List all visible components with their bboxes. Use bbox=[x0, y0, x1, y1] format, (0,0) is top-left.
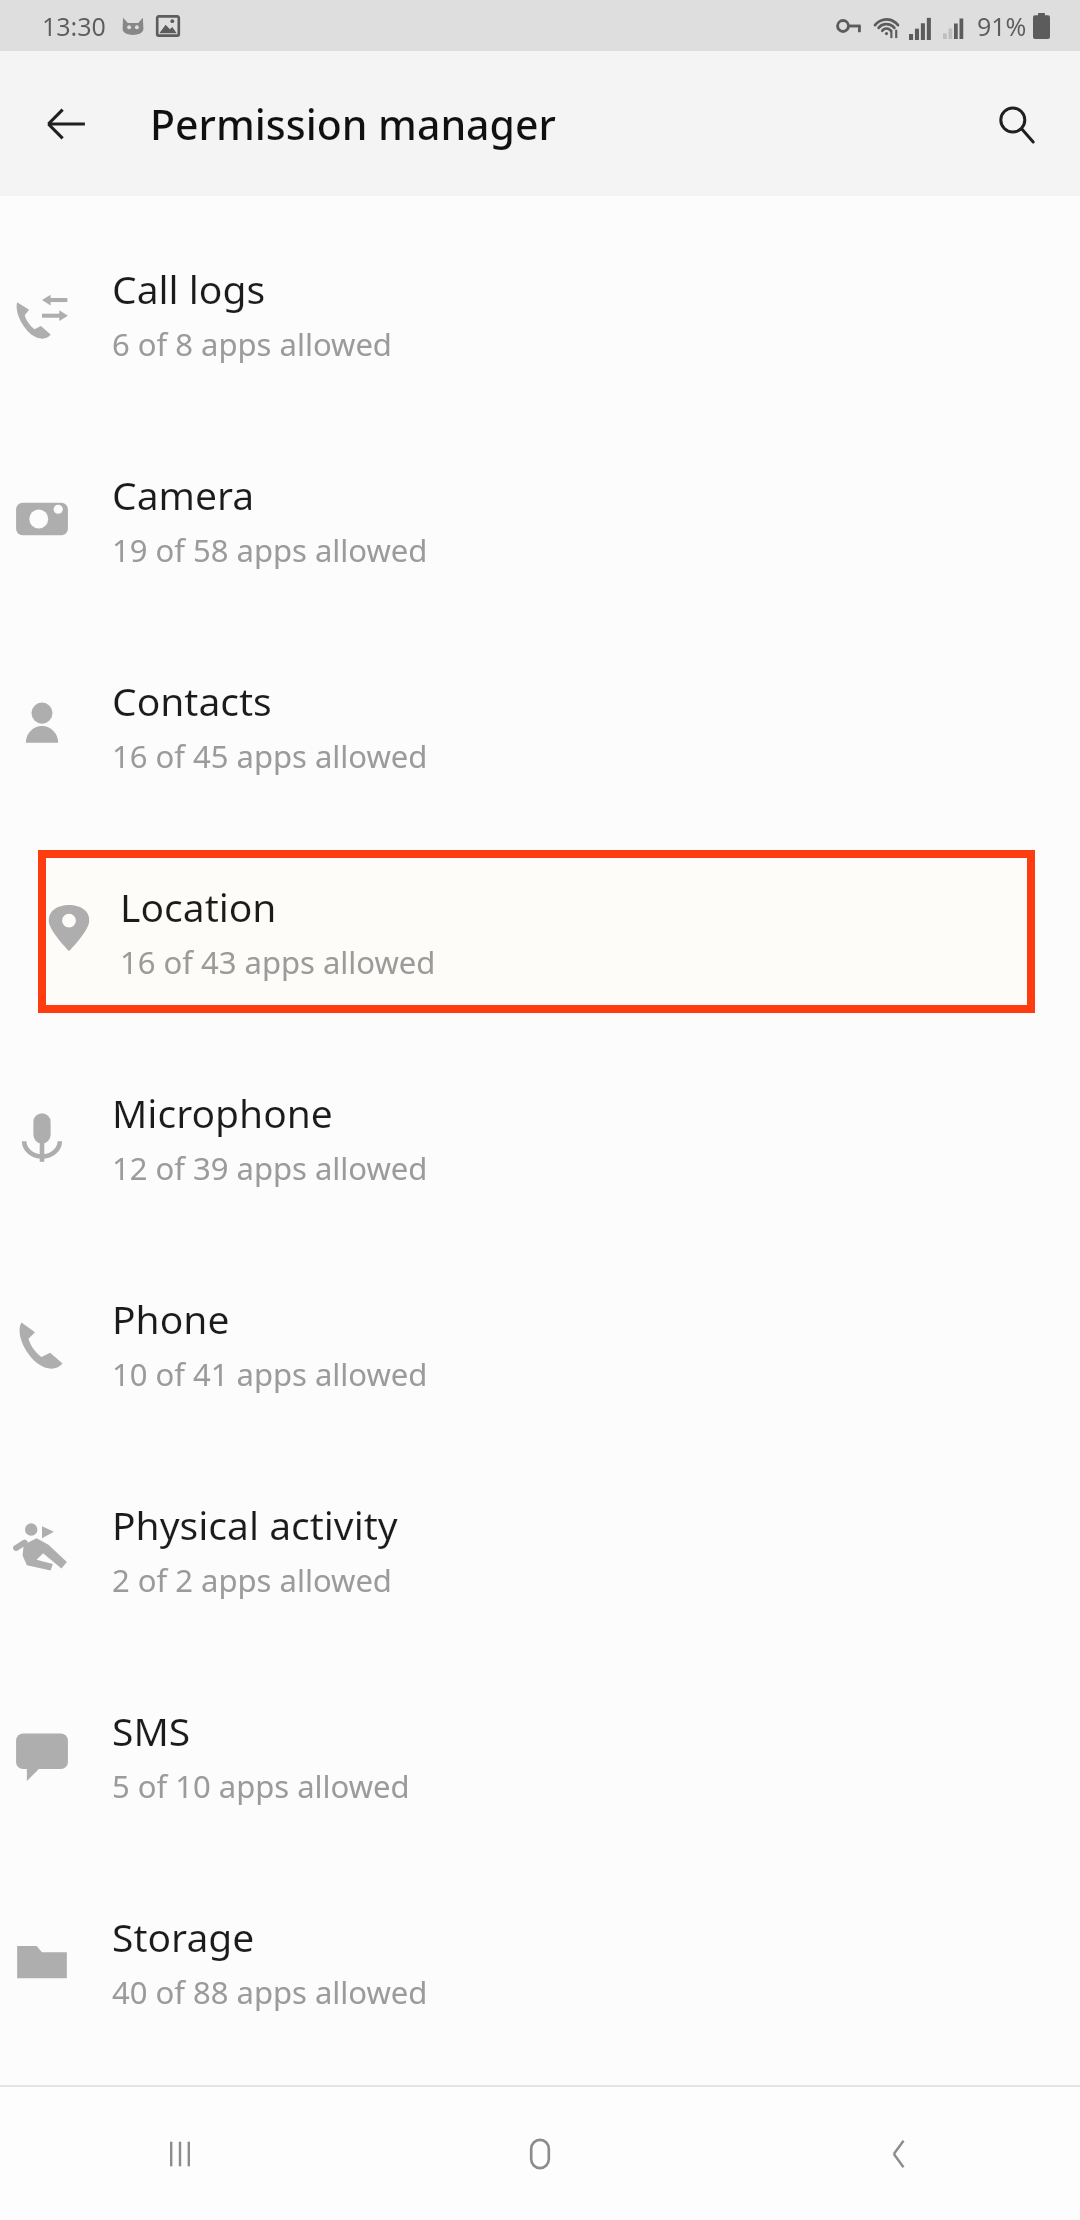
staticText: 12 of 39 apps allowed bbox=[112, 1147, 428, 1189]
staticText: 40 of 88 apps allowed bbox=[112, 1971, 428, 2013]
staticText: Location bbox=[120, 880, 277, 933]
button[interactable]: Storage bbox=[0, 1858, 1080, 2064]
staticText: 13:30 bbox=[42, 9, 106, 43]
staticText: Physical activity bbox=[112, 1498, 398, 1551]
button[interactable]: Recent apps bbox=[0, 2087, 360, 2220]
staticText: Phone bbox=[112, 1292, 230, 1345]
staticText: SMS bbox=[112, 1704, 191, 1757]
button[interactable]: Call logs bbox=[0, 210, 1080, 416]
button[interactable]: Microphone bbox=[0, 1034, 1080, 1240]
button[interactable]: SMS bbox=[0, 1652, 1080, 1858]
button[interactable]: Contacts bbox=[0, 622, 1080, 828]
staticText: 16 of 43 apps allowed bbox=[120, 941, 436, 983]
staticText: 16 of 45 apps allowed bbox=[112, 735, 428, 777]
staticText: Microphone bbox=[112, 1086, 333, 1139]
staticText: Camera bbox=[112, 468, 255, 521]
button[interactable]: Back bbox=[28, 86, 104, 162]
staticText: Contacts bbox=[112, 674, 272, 727]
button[interactable]: Physical activity bbox=[0, 1446, 1080, 1652]
staticText: 6 of 8 apps allowed bbox=[112, 323, 392, 365]
staticText: 91% bbox=[977, 9, 1027, 43]
staticText: 5 of 10 apps allowed bbox=[112, 1765, 410, 1807]
button[interactable]: Camera bbox=[0, 416, 1080, 622]
button[interactable]: Location bbox=[46, 858, 1027, 1005]
staticText: 2 of 2 apps allowed bbox=[112, 1559, 392, 1601]
staticText: Storage bbox=[112, 1910, 255, 1963]
staticText: 19 of 58 apps allowed bbox=[112, 529, 428, 571]
button[interactable]: Search bbox=[978, 86, 1054, 162]
button[interactable]: Home bbox=[360, 2087, 720, 2220]
button[interactable]: Back bbox=[720, 2087, 1080, 2220]
button[interactable]: Phone bbox=[0, 1240, 1080, 1446]
staticText: Permission manager bbox=[150, 96, 556, 152]
staticText: Call logs bbox=[112, 262, 266, 315]
staticText: 10 of 41 apps allowed bbox=[112, 1353, 428, 1395]
